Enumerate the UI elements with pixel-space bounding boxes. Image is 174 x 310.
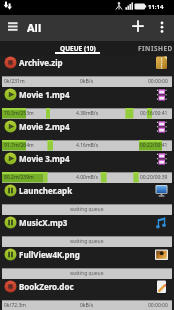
staticText: 0k/231m (4, 78, 25, 85)
staticText: 00:00:00 (148, 302, 168, 309)
staticText: 4.00mB/s (76, 174, 99, 181)
button[interactable]: Movie 3.mp4 (0, 151, 174, 183)
button[interactable]: FullView4K.png (0, 247, 174, 279)
button[interactable]: FINISHED (138, 41, 174, 55)
button[interactable] (128, 17, 148, 39)
button[interactable] (4, 18, 22, 38)
staticText: Archive.zip (19, 57, 63, 68)
staticText: 0k/72.3m (4, 302, 26, 309)
staticText: Movie 3.mp4 (19, 153, 70, 164)
staticText: 0kB/s (80, 302, 94, 309)
staticText: MusicX.mp3 (19, 217, 68, 228)
staticText: 00:16/00:41 (140, 110, 168, 117)
button[interactable]: QUEUE (10) (53, 41, 102, 55)
staticText: waiting queue (70, 270, 104, 277)
staticText: Launcher.apk (19, 185, 73, 196)
button[interactable]: BookZero.doc (0, 279, 174, 310)
staticText: 11:14 (148, 3, 164, 11)
staticText: 00:22/00:41 (140, 142, 168, 149)
staticText: Movie 2.mp4 (19, 121, 70, 132)
staticText: 0kB/s (80, 78, 94, 85)
staticText: waiting queue (70, 238, 104, 245)
staticText: 91.7m/264m (4, 142, 34, 149)
staticText: 4.38mB/s (76, 110, 99, 117)
staticText: 4.16mB/s (76, 142, 99, 149)
staticText: 70.3m/253m (4, 110, 34, 117)
staticText: All (27, 20, 42, 35)
staticText: 00:20/00:39 (140, 174, 168, 181)
staticText: Movie 1.mp4 (19, 89, 70, 100)
button[interactable] (155, 17, 169, 39)
staticText: waiting queue (70, 206, 104, 213)
staticText: 80.2m/239m (4, 174, 34, 181)
staticText: BookZero.doc (19, 281, 74, 292)
button[interactable]: Movie 1.mp4 (0, 87, 174, 119)
button[interactable]: MusicX.mp3 (0, 215, 174, 247)
staticText: FINISHED (138, 44, 173, 53)
button[interactable]: Movie 2.mp4 (0, 119, 174, 151)
staticText: QUEUE (10) (60, 44, 96, 53)
staticText: 00:00:00 (148, 78, 168, 85)
button[interactable]: Launcher.apk (0, 183, 174, 215)
staticText: FullView4K.png (19, 249, 80, 260)
button[interactable]: Archive.zip (0, 55, 174, 87)
